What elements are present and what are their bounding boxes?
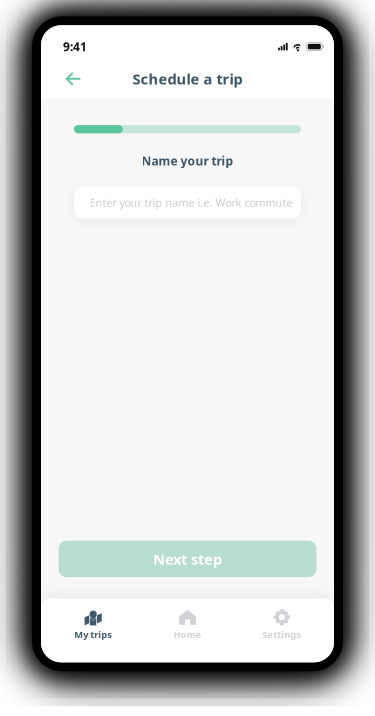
staticText: Name your trip	[141, 153, 233, 169]
button[interactable]: Settings	[235, 598, 329, 662]
staticText: Schedule a trip	[132, 69, 242, 89]
staticText: Home	[173, 628, 201, 640]
staticText: 9:41	[63, 39, 87, 54]
button[interactable]: Next step	[59, 541, 316, 577]
staticText: Next step	[153, 549, 222, 569]
button[interactable]: Home	[140, 598, 235, 662]
staticText: Enter your trip name i.e. Work commute	[89, 195, 292, 210]
staticText: My trips	[74, 628, 112, 640]
staticText: Settings	[262, 628, 301, 640]
button[interactable]: My trips	[46, 598, 140, 662]
button[interactable]: Back	[59, 66, 87, 92]
